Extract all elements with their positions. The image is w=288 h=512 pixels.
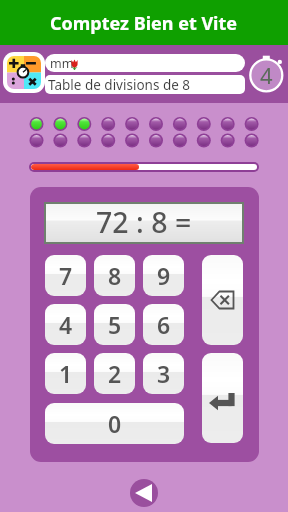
staticText: 3 [157, 358, 171, 389]
button[interactable]: 6 [143, 304, 184, 345]
button[interactable]: 2 [94, 353, 135, 394]
staticText: 2 [108, 358, 122, 389]
button[interactable]: Table de divisions de 8 [45, 75, 245, 94]
button[interactable]: 5 [94, 304, 135, 345]
staticText: 5 [108, 309, 122, 340]
staticText: 8 [108, 260, 122, 291]
button[interactable]: Backspace [202, 255, 243, 345]
staticText: 4 [260, 60, 273, 90]
staticText: 1 [59, 358, 73, 389]
staticText: 72 : 8 = [96, 203, 192, 241]
button[interactable]: Calculator app icon [3, 52, 45, 93]
button[interactable]: 1 [45, 353, 86, 394]
button[interactable]: Enter [202, 353, 243, 443]
button[interactable]: 0 [45, 403, 184, 444]
button[interactable]: 8 [94, 255, 135, 296]
button[interactable]: Timer [248, 52, 285, 94]
button[interactable]: 7 [45, 255, 86, 296]
button[interactable]: 3 [143, 353, 184, 394]
staticText: 0 [108, 408, 122, 439]
staticText: 6 [157, 309, 171, 340]
staticText: Table de divisions de 8 [48, 76, 191, 94]
button[interactable]: 4 [45, 304, 86, 345]
button[interactable]: 9 [143, 255, 184, 296]
staticText: 9 [157, 260, 171, 291]
staticText: Comptez Bien et Vite [50, 11, 238, 36]
button[interactable]: Back [130, 479, 158, 507]
staticText: 4 [59, 309, 73, 340]
staticText: 7 [59, 260, 73, 291]
button[interactable]: mm [45, 54, 245, 72]
staticText: mm [50, 55, 74, 72]
